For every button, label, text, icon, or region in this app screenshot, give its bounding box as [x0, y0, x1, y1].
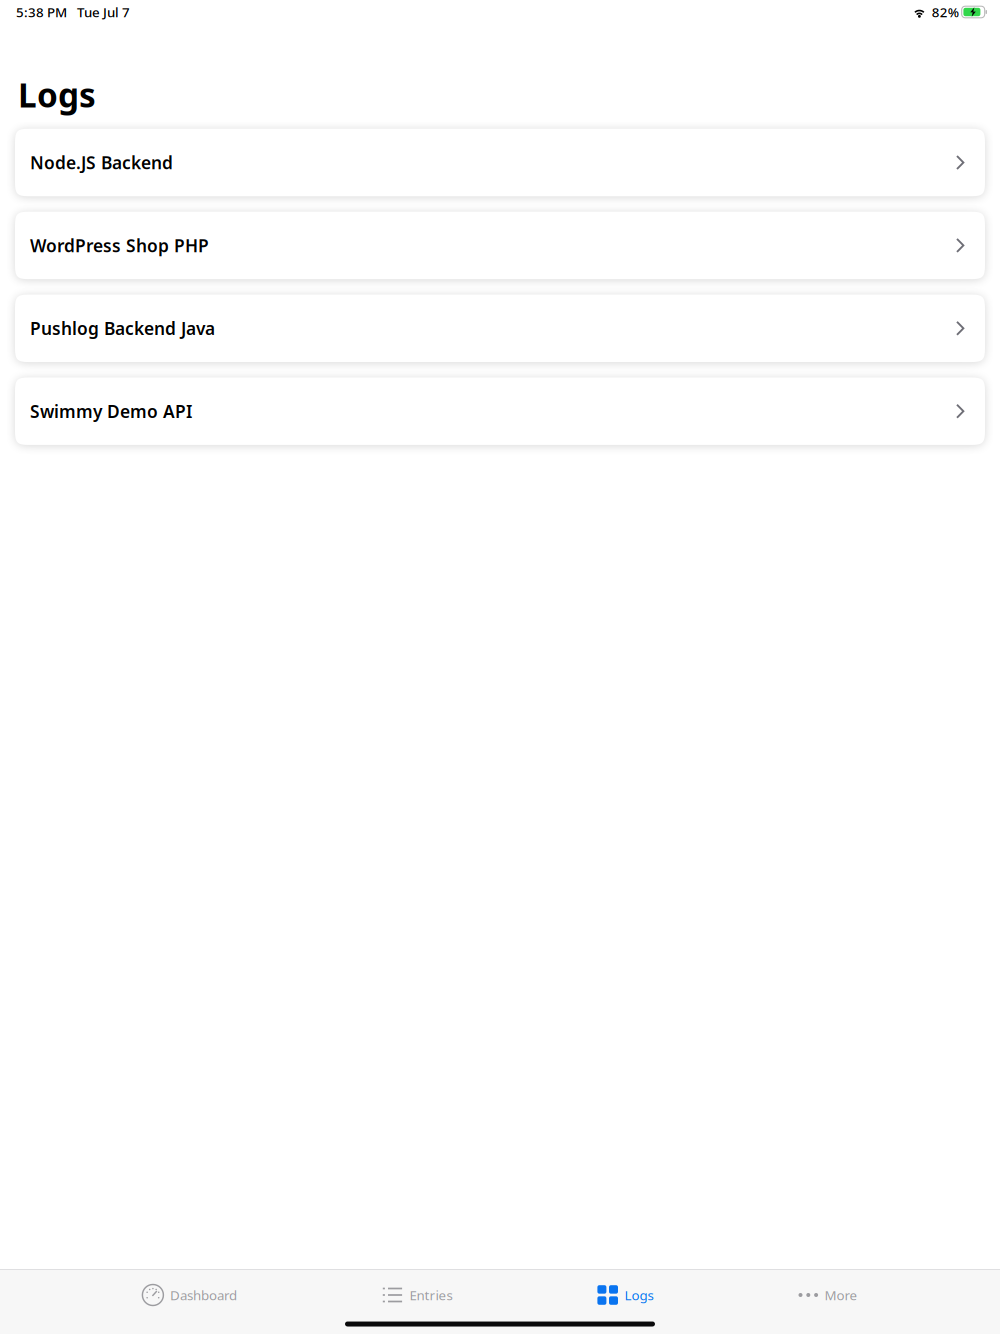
staticText: Entries	[409, 1286, 452, 1304]
staticText: Dashboard	[170, 1286, 237, 1304]
staticText: 5:38 PM	[16, 3, 67, 21]
staticText: WordPress Shop PHP	[30, 234, 209, 257]
staticText: Logs	[624, 1286, 653, 1304]
staticText: More	[825, 1286, 858, 1304]
button[interactable]: Swimmy Demo API	[15, 377, 985, 445]
staticText: Pushlog Backend Java	[30, 317, 215, 340]
button[interactable]: Pushlog Backend Java	[15, 295, 985, 362]
button[interactable]: Logs	[591, 1271, 659, 1319]
staticText: Logs	[18, 72, 96, 117]
button[interactable]: Node.JS Backend	[15, 129, 985, 196]
staticText: Node.JS Backend	[30, 151, 173, 174]
staticText: 82%	[932, 3, 959, 21]
button[interactable]: More	[792, 1271, 864, 1319]
button[interactable]: Dashboard	[136, 1271, 243, 1319]
button[interactable]: WordPress Shop PHP	[15, 212, 985, 279]
button[interactable]: Entries	[376, 1271, 458, 1319]
staticText: Tue Jul 7	[77, 3, 130, 21]
staticText: Swimmy Demo API	[30, 400, 192, 423]
